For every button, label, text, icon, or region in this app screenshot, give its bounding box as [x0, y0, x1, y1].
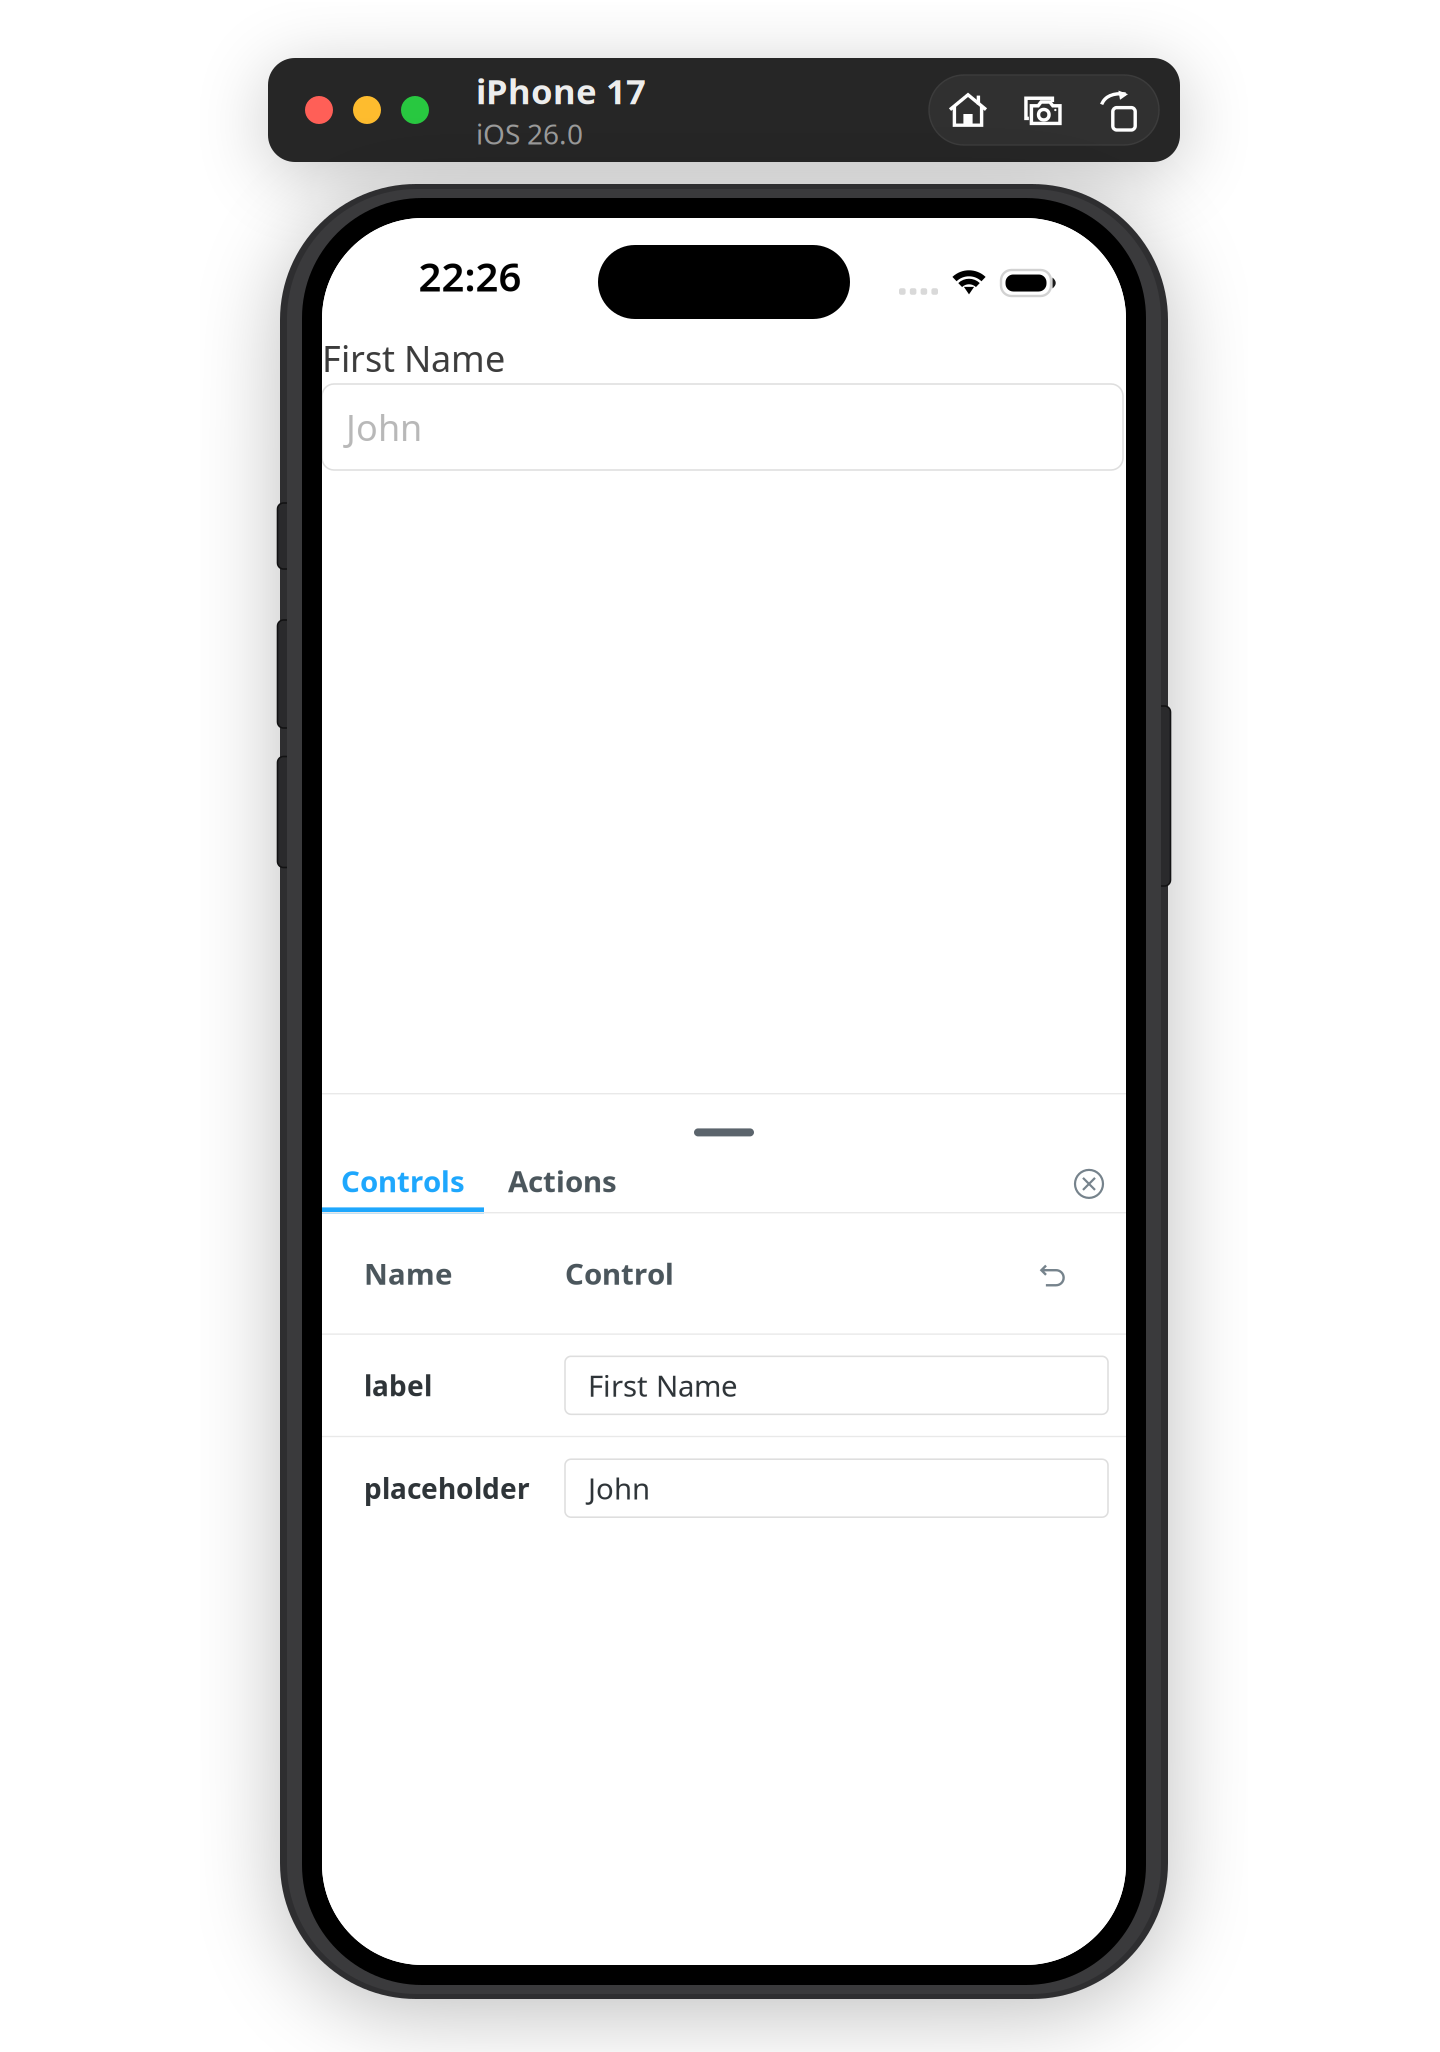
staticText: First Name	[322, 334, 505, 382]
staticText: label	[364, 1367, 432, 1404]
button[interactable]: Home	[930, 75, 1006, 145]
staticText: Name	[364, 1254, 453, 1293]
button[interactable]: Zoom window	[401, 96, 429, 124]
button[interactable]: Rotate	[1082, 75, 1158, 145]
button[interactable]: Close window	[305, 96, 333, 124]
staticText: placeholder	[364, 1470, 530, 1507]
staticText: iPhone 17	[476, 68, 646, 114]
staticText: Control	[565, 1254, 674, 1293]
button[interactable]: Screenshot	[1006, 75, 1082, 145]
staticText: Actions	[508, 1161, 617, 1200]
button[interactable]: John	[322, 384, 1123, 470]
button[interactable]: Close inspector	[1060, 1154, 1118, 1213]
button[interactable]: Reset controls	[1027, 1249, 1075, 1297]
staticText: iOS 26.0	[476, 115, 583, 152]
button[interactable]: Minimise window	[353, 96, 381, 124]
button[interactable]: First Name	[565, 1356, 1108, 1414]
staticText: Controls	[341, 1161, 465, 1200]
staticText: 22:26	[418, 249, 521, 302]
staticText: John	[588, 1469, 650, 1508]
button[interactable]: Actions	[484, 1154, 641, 1213]
staticText: First Name	[588, 1366, 738, 1405]
button[interactable]: Controls	[322, 1154, 484, 1213]
staticText: John	[346, 403, 422, 451]
button[interactable]: John	[565, 1459, 1108, 1517]
